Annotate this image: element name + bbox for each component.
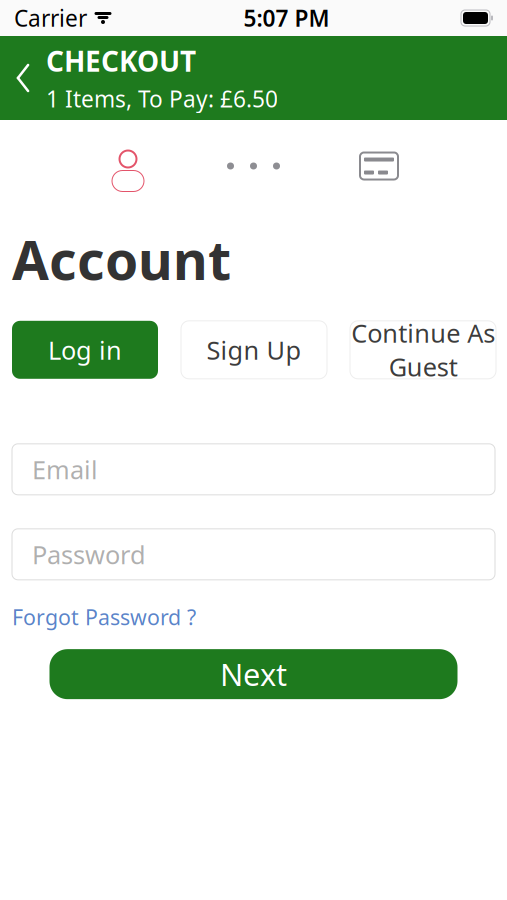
staticText: Sign Up [206, 333, 301, 367]
staticText: Account [12, 224, 231, 295]
button[interactable]: Back [0, 36, 46, 120]
staticText: Forgot Password ? [12, 603, 196, 631]
button[interactable]: Email [12, 444, 495, 495]
staticText: 5:07 PM [243, 3, 329, 33]
staticText: Password [32, 537, 146, 571]
staticText: CHECKOUT [46, 42, 196, 80]
staticText: Next [220, 654, 287, 694]
button[interactable]: Continue As Guest [350, 321, 496, 379]
button[interactable]: Forgot Password ? [0, 597, 208, 637]
button[interactable]: Sign Up [181, 321, 327, 379]
staticText: Continue As Guest [351, 316, 495, 383]
staticText: Email [32, 452, 98, 486]
button[interactable]: Log in [12, 321, 158, 379]
button[interactable]: Password [12, 529, 495, 580]
staticText: Carrier [14, 3, 87, 33]
staticText: Log in [48, 333, 122, 367]
staticText: 1 Items, To Pay: £6.50 [46, 83, 278, 114]
button[interactable]: Next [49, 649, 457, 699]
